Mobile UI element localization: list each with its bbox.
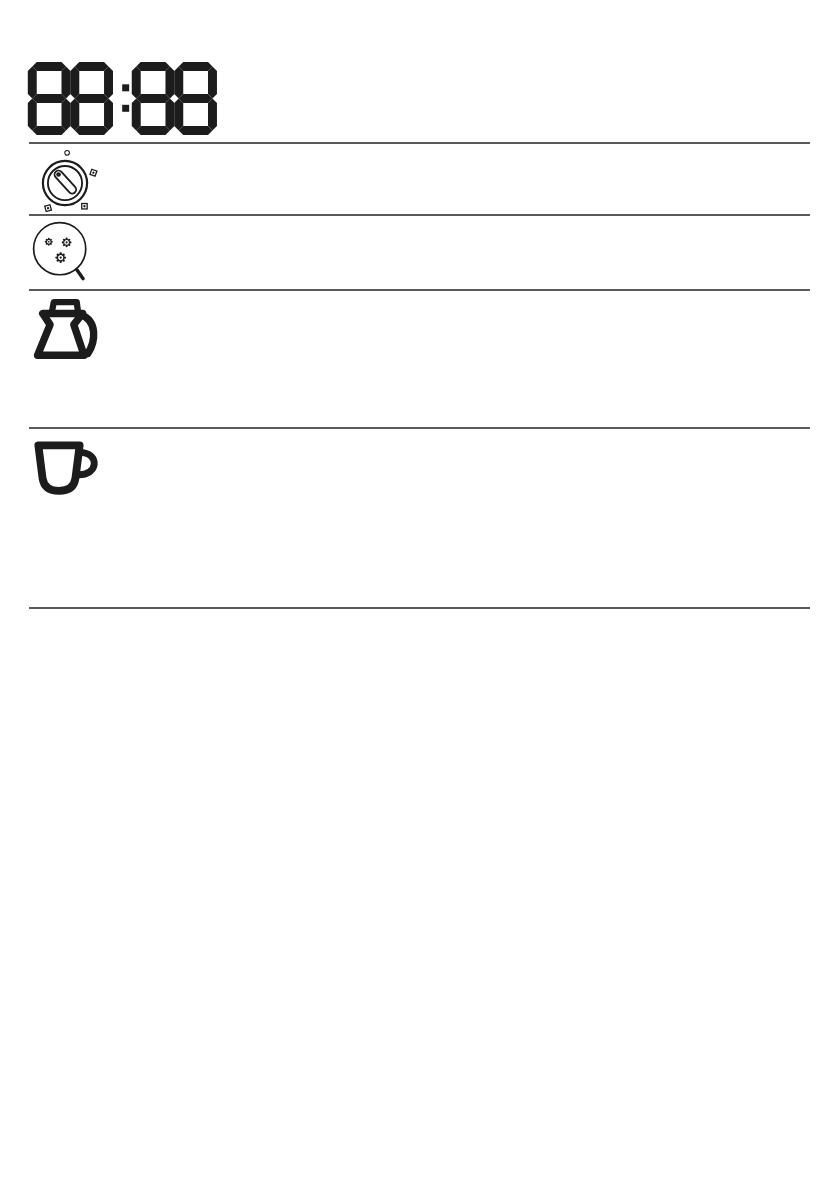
button[interactable]: Cup [29, 429, 810, 607]
button[interactable]: Set dial [29, 144, 810, 214]
button[interactable]: Carafe [29, 291, 810, 427]
button[interactable]: Grind coffee [29, 216, 810, 289]
